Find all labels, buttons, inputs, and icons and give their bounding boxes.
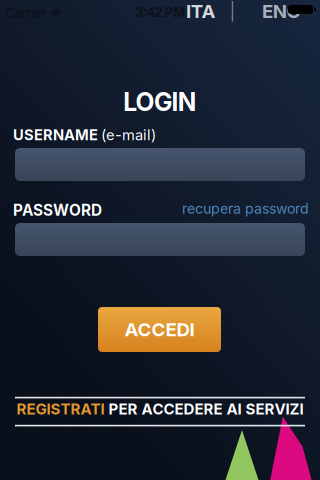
staticText: Carrier — [5, 5, 46, 21]
staticText: REGISTRATI — [16, 400, 104, 418]
staticText: ACCEDI — [124, 318, 194, 341]
button[interactable] — [15, 148, 305, 181]
staticText: (e-mail) — [101, 126, 156, 144]
button[interactable]: ITA — [186, 0, 215, 23]
button[interactable] — [15, 223, 305, 256]
staticText: ENG — [262, 0, 300, 23]
staticText: PASSWORD — [13, 201, 102, 220]
staticText: recupera password — [182, 200, 309, 217]
button[interactable]: recupera password — [182, 200, 309, 217]
button[interactable]: REGISTRATI — [16, 400, 303, 418]
staticText: ITA — [186, 0, 215, 23]
staticText: PER ACCEDERE AI SERVIZI — [104, 400, 303, 418]
staticText: 3:42 PM — [135, 4, 185, 20]
button[interactable]: ACCEDI — [98, 307, 221, 352]
staticText: USERNAME — [13, 126, 98, 144]
button[interactable]: ENG — [262, 0, 300, 23]
staticText: LOGIN — [123, 87, 197, 117]
staticText: | — [229, 1, 235, 22]
